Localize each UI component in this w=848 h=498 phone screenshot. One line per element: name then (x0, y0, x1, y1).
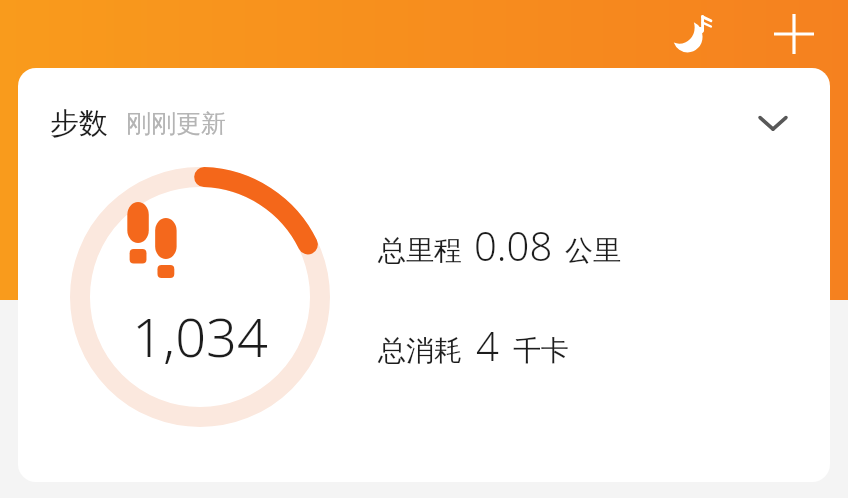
staticText: 总里程 (378, 233, 462, 268)
staticText: 千卡 (513, 333, 569, 368)
staticText: 4 (476, 318, 499, 372)
staticText: 0.08 (474, 218, 553, 272)
button[interactable]: 步数 (18, 68, 830, 482)
staticText: 总消耗 (378, 333, 462, 368)
button[interactable]: Sleep music (660, 2, 724, 66)
button[interactable]: Collapse (742, 92, 804, 154)
staticText: 1,034 (132, 299, 268, 373)
staticText: 公里 (565, 233, 621, 268)
staticText: 刚刚更新 (126, 108, 226, 139)
button[interactable]: Add (762, 2, 826, 66)
staticText: 步数 (50, 105, 108, 142)
